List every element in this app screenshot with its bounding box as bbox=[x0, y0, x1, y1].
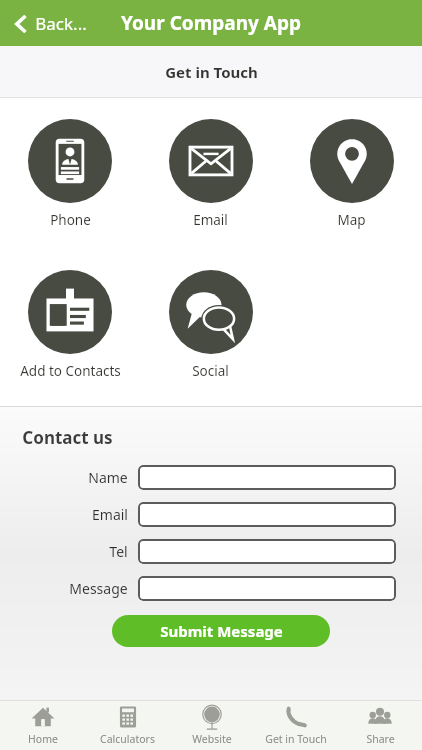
staticText: Back... bbox=[35, 12, 87, 35]
button[interactable]: Home bbox=[0, 700, 85, 750]
staticText: Map bbox=[337, 211, 366, 229]
staticText: Email bbox=[92, 505, 128, 524]
staticText: Calculators bbox=[100, 732, 155, 746]
button[interactable]: Share bbox=[338, 700, 422, 750]
staticText: Social bbox=[192, 362, 229, 380]
button[interactable]: Back... bbox=[0, 6, 99, 41]
button[interactable] bbox=[138, 576, 396, 601]
button[interactable]: Phone bbox=[0, 117, 140, 231]
button[interactable] bbox=[138, 465, 396, 490]
staticText: Submit Message bbox=[160, 621, 283, 641]
button[interactable]: Email bbox=[140, 117, 281, 231]
button[interactable]: Social bbox=[140, 268, 281, 382]
staticText: Add to Contacts bbox=[20, 362, 121, 380]
staticText: Website bbox=[192, 732, 232, 746]
staticText: Your Company App bbox=[121, 10, 301, 36]
staticText: Tel bbox=[109, 542, 128, 561]
staticText: Home bbox=[28, 732, 58, 746]
button[interactable]: Submit Message bbox=[112, 615, 330, 647]
staticText: Message bbox=[69, 579, 128, 598]
button[interactable]: Get in Touch bbox=[254, 700, 338, 750]
button[interactable]: Add to Contacts bbox=[0, 268, 140, 382]
staticText: Email bbox=[193, 211, 228, 229]
staticText: Contact us bbox=[22, 426, 113, 449]
button[interactable]: Website bbox=[170, 700, 254, 750]
button[interactable]: Calculators bbox=[85, 700, 170, 750]
button[interactable] bbox=[138, 502, 396, 527]
button[interactable]: Map bbox=[281, 117, 422, 231]
staticText: Get in Touch bbox=[165, 62, 258, 82]
staticText: Phone bbox=[50, 211, 91, 229]
staticText: Get in Touch bbox=[265, 732, 327, 746]
button[interactable] bbox=[138, 539, 396, 564]
staticText: Share bbox=[366, 732, 395, 746]
staticText: Name bbox=[88, 468, 128, 487]
